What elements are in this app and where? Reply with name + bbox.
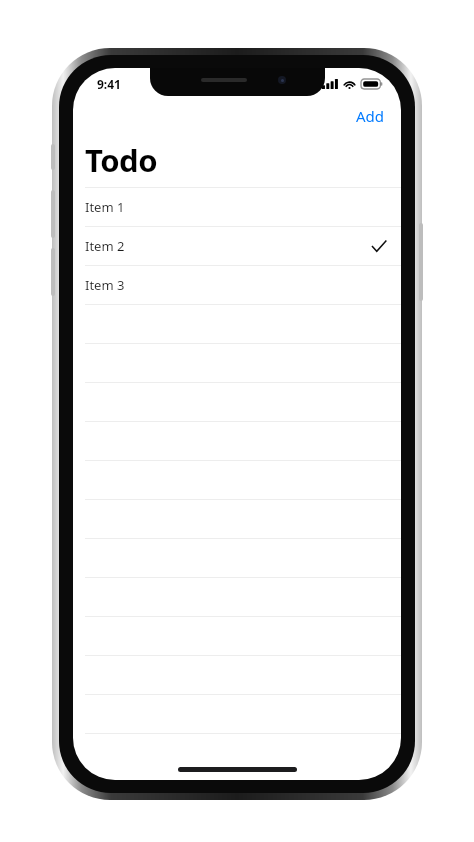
other: Completed bbox=[371, 239, 387, 253]
other: Cellular signal bbox=[322, 79, 338, 89]
staticText: Item 2 bbox=[85, 237, 125, 255]
button[interactable]: Item 2 bbox=[73, 227, 401, 265]
staticText: 9:41 bbox=[97, 76, 121, 92]
staticText: Add bbox=[356, 106, 385, 126]
button[interactable]: Add bbox=[340, 100, 401, 132]
other: Wi-Fi bbox=[343, 79, 356, 89]
button[interactable]: Item 3 bbox=[73, 266, 401, 304]
button[interactable]: Item 1 bbox=[73, 188, 401, 226]
other: Battery bbox=[361, 79, 383, 89]
staticText: Todo bbox=[85, 139, 158, 181]
staticText: Item 1 bbox=[85, 198, 125, 216]
staticText: Item 3 bbox=[85, 276, 125, 294]
